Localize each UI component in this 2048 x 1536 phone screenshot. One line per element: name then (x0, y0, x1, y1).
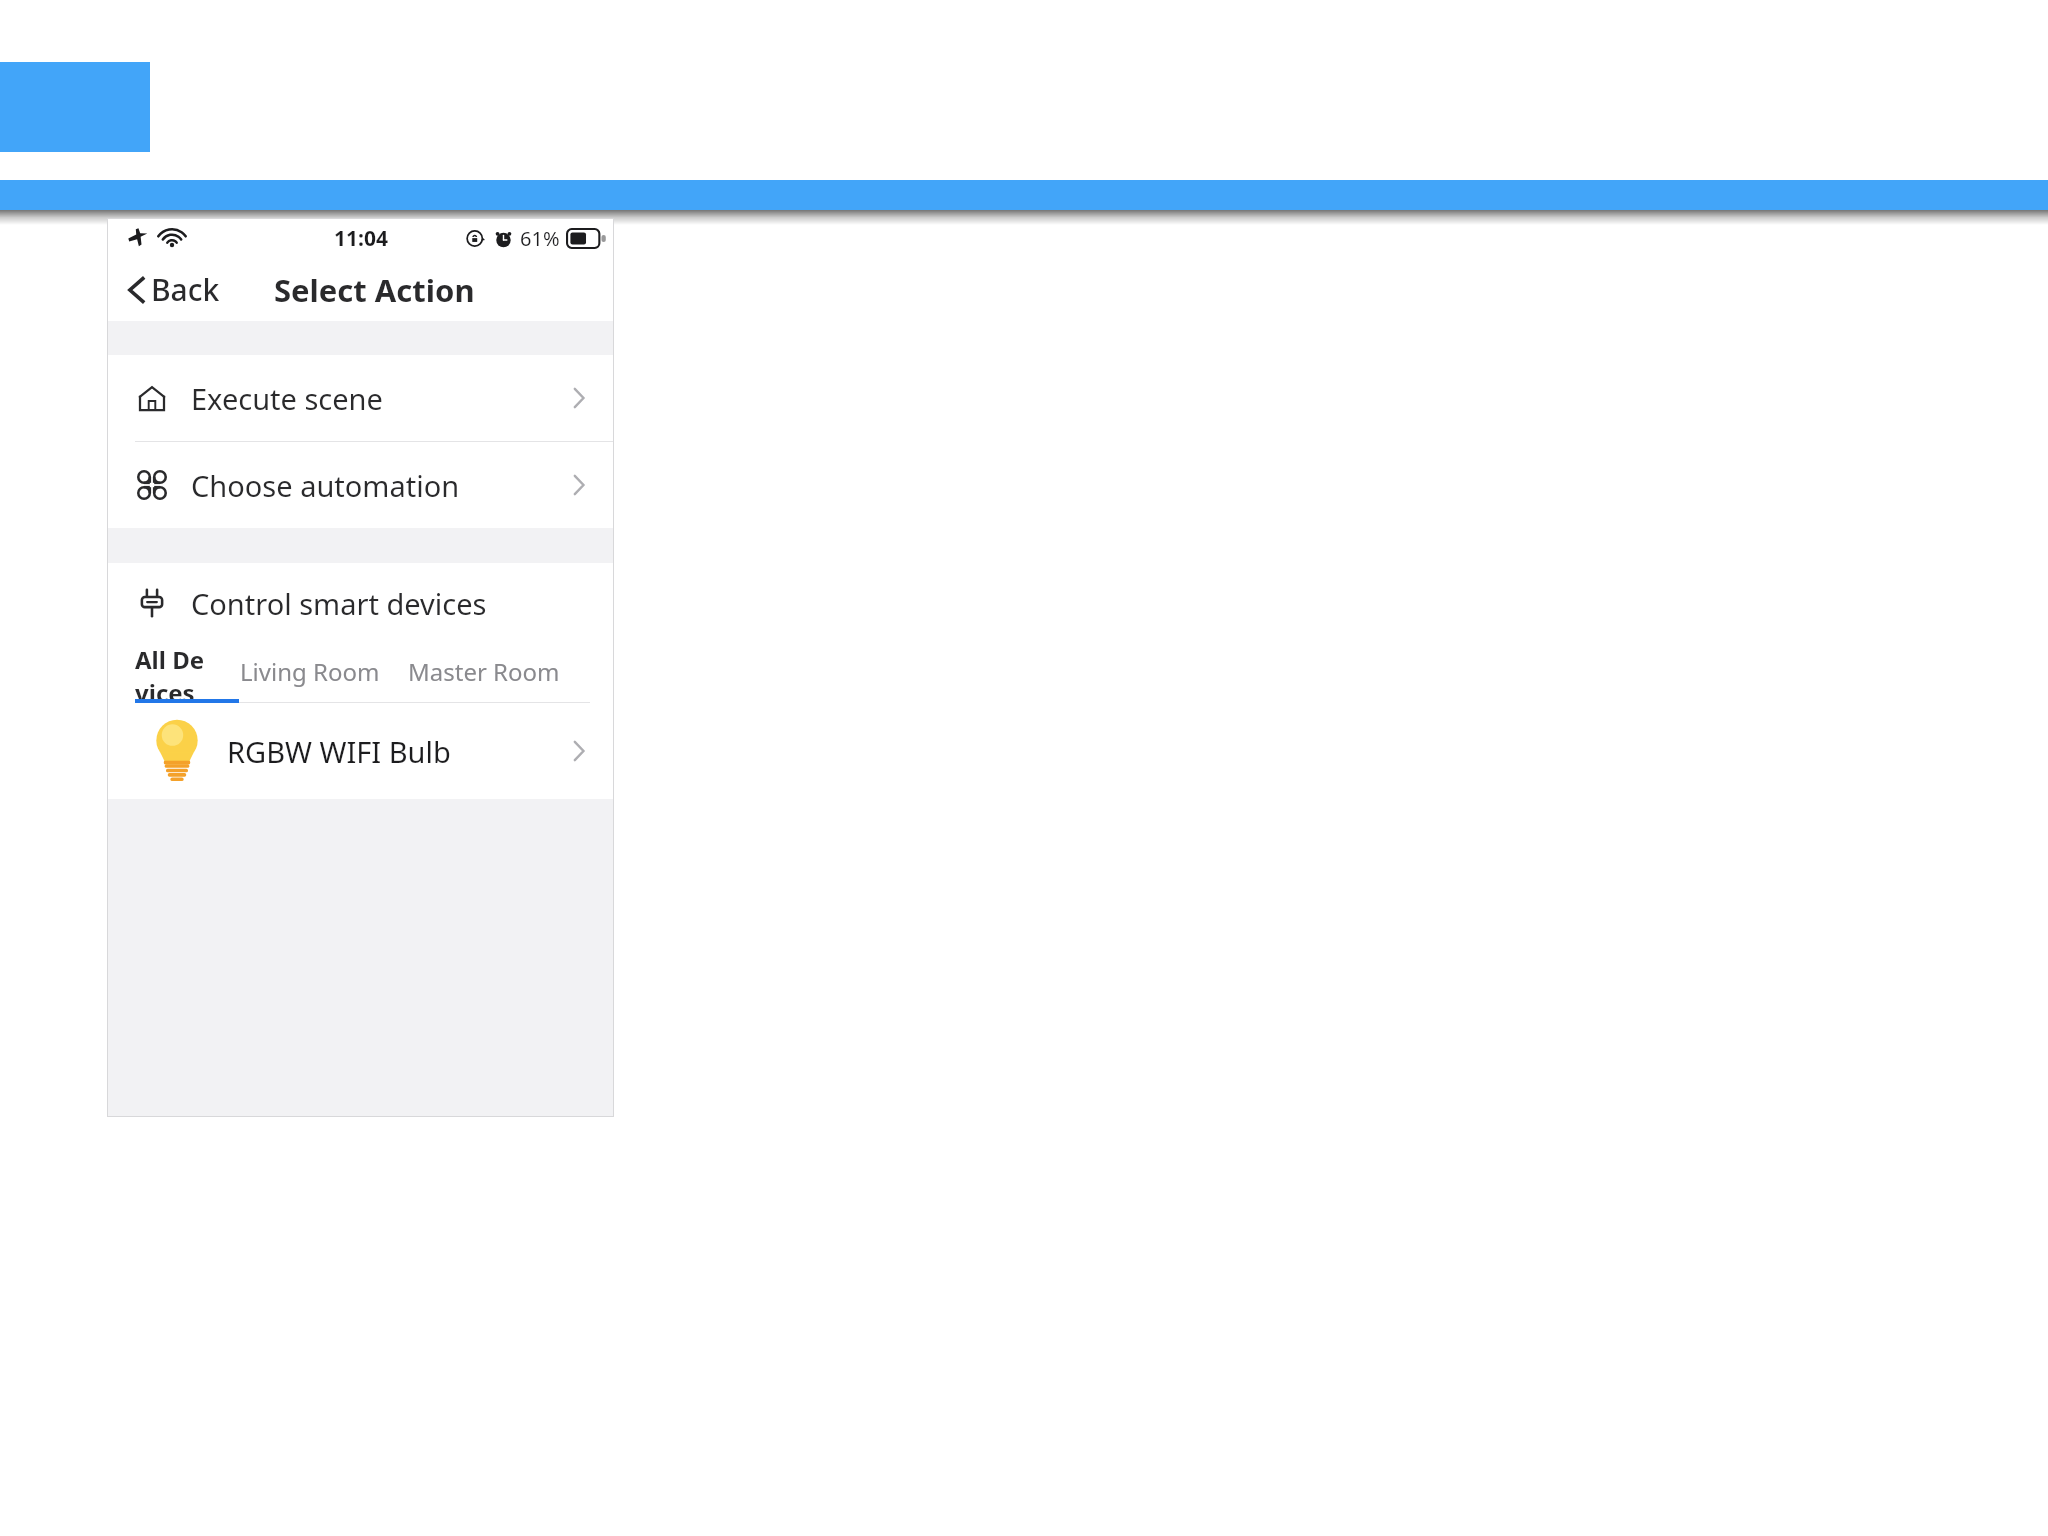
other: Control smart devices (137, 588, 167, 618)
button[interactable]: Choose automation (107, 442, 614, 528)
other: Execute scene (137, 383, 167, 413)
staticText: Control smart devices (191, 584, 487, 623)
button[interactable]: All Devices (135, 643, 212, 699)
other: Light bulb (155, 718, 199, 784)
staticText: All Devices (135, 643, 212, 699)
staticText: 11:04 (334, 224, 388, 253)
button[interactable]: Execute scene (107, 355, 614, 441)
other: Choose automation (137, 470, 167, 500)
button[interactable]: Master Room (408, 643, 560, 699)
staticText: Back (151, 269, 220, 310)
staticText: RGBW WIFI Bulb (227, 732, 451, 771)
staticText: 61% (520, 225, 560, 252)
staticText: Execute scene (191, 379, 383, 418)
button[interactable]: Back (127, 269, 220, 310)
staticText: Choose automation (191, 466, 460, 505)
button[interactable]: Light bulb (107, 703, 614, 799)
button[interactable]: Control smart devices (107, 563, 614, 643)
staticText: Living Room (240, 655, 380, 688)
other: Back (127, 275, 145, 305)
button[interactable]: Living Room (240, 643, 380, 699)
staticText: Master Room (408, 655, 560, 688)
staticText: Select Action (274, 269, 475, 311)
